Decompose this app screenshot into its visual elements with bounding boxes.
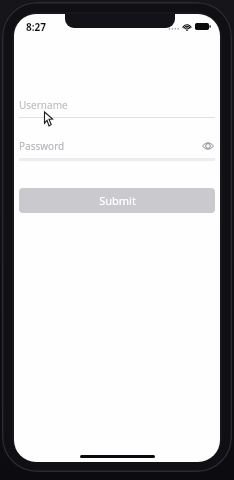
staticText: Submit: [99, 193, 136, 208]
button[interactable]: Show password: [201, 139, 215, 153]
button[interactable]: Password: [14, 139, 220, 161]
staticText: Username: [19, 98, 68, 112]
staticText: 8:27: [26, 20, 46, 34]
staticText: Password: [19, 139, 201, 153]
button[interactable]: Submit: [19, 188, 215, 213]
button[interactable]: Username: [14, 98, 220, 118]
